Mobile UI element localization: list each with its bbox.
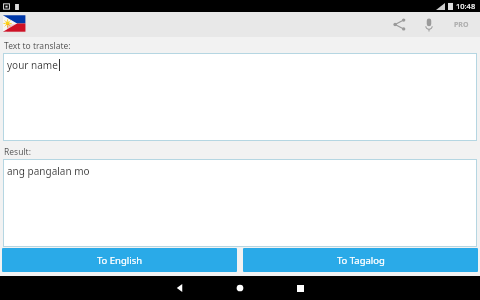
button[interactable]: your name	[3, 53, 477, 141]
staticText: your name	[7, 58, 58, 72]
button[interactable]: App icon	[3, 14, 31, 35]
button[interactable]: Share	[386, 12, 412, 37]
button[interactable]: To Tagalog	[243, 248, 478, 272]
button[interactable]: Voice input	[416, 12, 442, 37]
staticText: 10:48	[456, 1, 476, 11]
staticText: Result:	[4, 146, 31, 158]
button[interactable]: Home	[220, 276, 260, 300]
staticText: ang pangalan mo	[7, 164, 90, 178]
button[interactable]: PRO	[448, 12, 474, 37]
button[interactable]: Back	[160, 276, 200, 300]
staticText: To English	[97, 254, 143, 267]
staticText: To Tagalog	[337, 254, 385, 267]
staticText: PRO	[454, 20, 469, 30]
button[interactable]: To English	[2, 248, 237, 272]
staticText: Text to translate:	[4, 40, 71, 52]
button[interactable]: Recent apps	[280, 276, 320, 300]
button[interactable]: ang pangalan mo	[3, 159, 477, 247]
